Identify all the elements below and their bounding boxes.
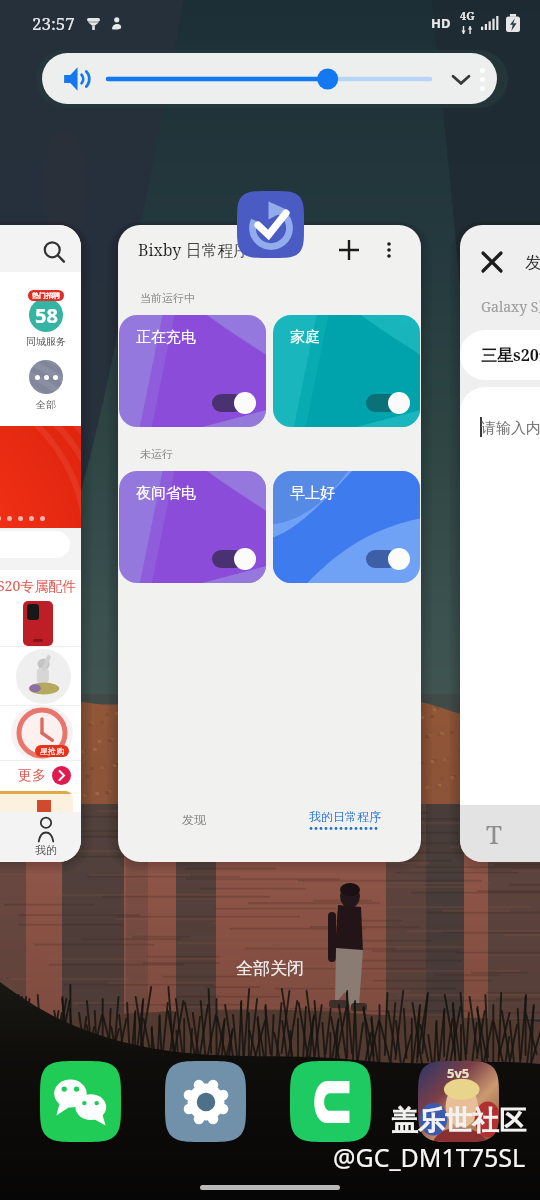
button[interactable]: More options [373,234,405,266]
staticText: 同城服务 [26,335,66,348]
staticText: 家庭 [290,328,320,347]
staticText: 星抢购 [40,746,64,756]
staticText: HD [431,14,451,32]
button[interactable]: 家庭 [273,315,420,427]
staticText: S20专属配件 [0,576,77,595]
staticText: 盖乐世社区 [391,1104,526,1138]
staticText: 正在充电 [136,328,196,347]
button[interactable]: Expand volume panel [444,62,478,96]
staticText: 发现 [182,812,206,827]
staticText: 我的日常程序 [309,809,381,824]
button[interactable]: Bixby Routines [237,191,304,258]
staticText: 热门招聘 [32,291,60,300]
button[interactable]: 正在充电 [119,315,266,427]
button[interactable]: Bixby 日常程序 [118,225,421,862]
button[interactable]: 全部关闭 [214,952,326,985]
staticText: 我的 [35,843,57,857]
staticText: T [486,816,502,851]
staticText: 三星s20最 [481,344,540,366]
button[interactable]: Volume [58,60,96,98]
staticText: 当前运行中 [140,291,195,305]
staticText: @GC_DM1T75SL [333,1140,526,1174]
button[interactable]: Close [481,251,503,273]
staticText: 5v5 [447,1064,470,1082]
staticText: 未运行 [140,447,173,461]
button[interactable]: WeChat [40,1061,121,1142]
staticText: 23:57 [32,12,75,35]
staticText: Galaxy S系列 [481,297,540,316]
button[interactable]: 夜间省电 [119,471,266,583]
staticText: 全部 [36,398,56,411]
button[interactable]: Close [460,225,540,862]
button[interactable]: Add [333,234,365,266]
staticText: 更多 [18,767,46,785]
button[interactable]: 发现 [118,812,269,827]
button[interactable]: 58 [0,225,81,862]
button[interactable]: Toggle 早上好 [363,547,410,571]
button[interactable]: Volume [42,53,497,104]
button[interactable]: Game [418,1061,499,1142]
button[interactable]: 早上好 [273,471,420,583]
button[interactable]: Toggle 家庭 [363,391,410,415]
staticText: 夜间省电 [136,484,196,503]
staticText: 4G [460,8,475,23]
button[interactable]: 我的日常程序 [269,809,421,830]
button[interactable]: Phone [290,1061,371,1142]
staticText: 58 [35,302,58,329]
button[interactable]: Toggle 正在充电 [209,391,256,415]
staticText: 发布 [525,252,540,273]
staticText: 全部关闭 [236,958,304,979]
staticText: Bixby 日常程序 [138,239,250,261]
staticText: 早上好 [290,484,335,503]
button[interactable]: Settings [165,1061,246,1142]
staticText: 请输入内容 [481,419,540,438]
button[interactable]: Toggle 夜间省电 [209,547,256,571]
